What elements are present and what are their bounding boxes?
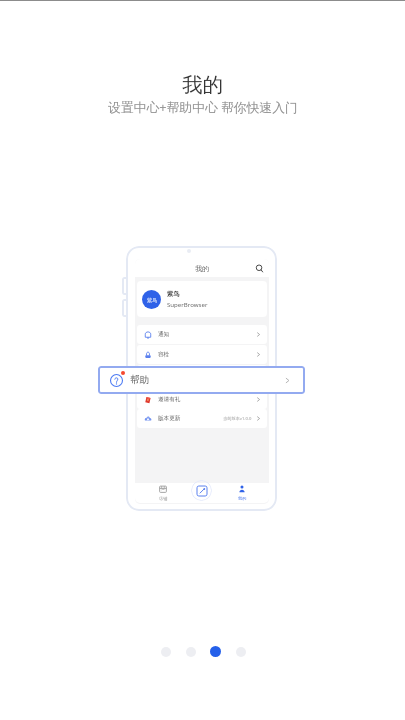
button[interactable]: Page — [161, 647, 171, 657]
staticText: 我的 — [182, 72, 223, 98]
button[interactable]: 版本更新 — [137, 409, 267, 428]
button[interactable]: 容栓 — [137, 345, 267, 364]
staticText: 帮助 — [130, 374, 150, 386]
staticText: 紫鸟 — [167, 290, 180, 298]
button[interactable]: 帮助 — [98, 366, 305, 394]
button[interactable]: Search — [255, 264, 264, 273]
staticText: 邀请有礼 — [158, 396, 181, 403]
button[interactable]: 邀请有礼 — [137, 390, 267, 409]
staticText: 设置中心+帮助中心 帮你快速入门 — [108, 98, 298, 115]
button[interactable]: 紫鸟 — [137, 281, 267, 317]
staticText: 当前版本v1.0.0 — [223, 416, 252, 422]
staticText: 容栓 — [158, 351, 170, 358]
button[interactable]: Page — [236, 647, 246, 657]
button[interactable]: 帮助 — [137, 365, 267, 384]
button[interactable]: Page 3, current — [210, 646, 221, 657]
staticText: SuperBrowser — [167, 300, 208, 308]
staticText: 我的 — [195, 264, 209, 273]
button[interactable]: 我的 — [232, 485, 252, 501]
button[interactable]: 店铺 — [153, 485, 173, 501]
button[interactable]: 通知 — [137, 325, 267, 344]
staticText: 紫鸟 — [147, 297, 157, 303]
staticText: 我的 — [238, 496, 247, 501]
button[interactable]: Page — [186, 647, 196, 657]
staticText: 店铺 — [159, 496, 168, 501]
staticText: 通知 — [158, 331, 170, 338]
button[interactable]: Create — [191, 480, 212, 501]
staticText: 版本更新 — [158, 415, 181, 422]
